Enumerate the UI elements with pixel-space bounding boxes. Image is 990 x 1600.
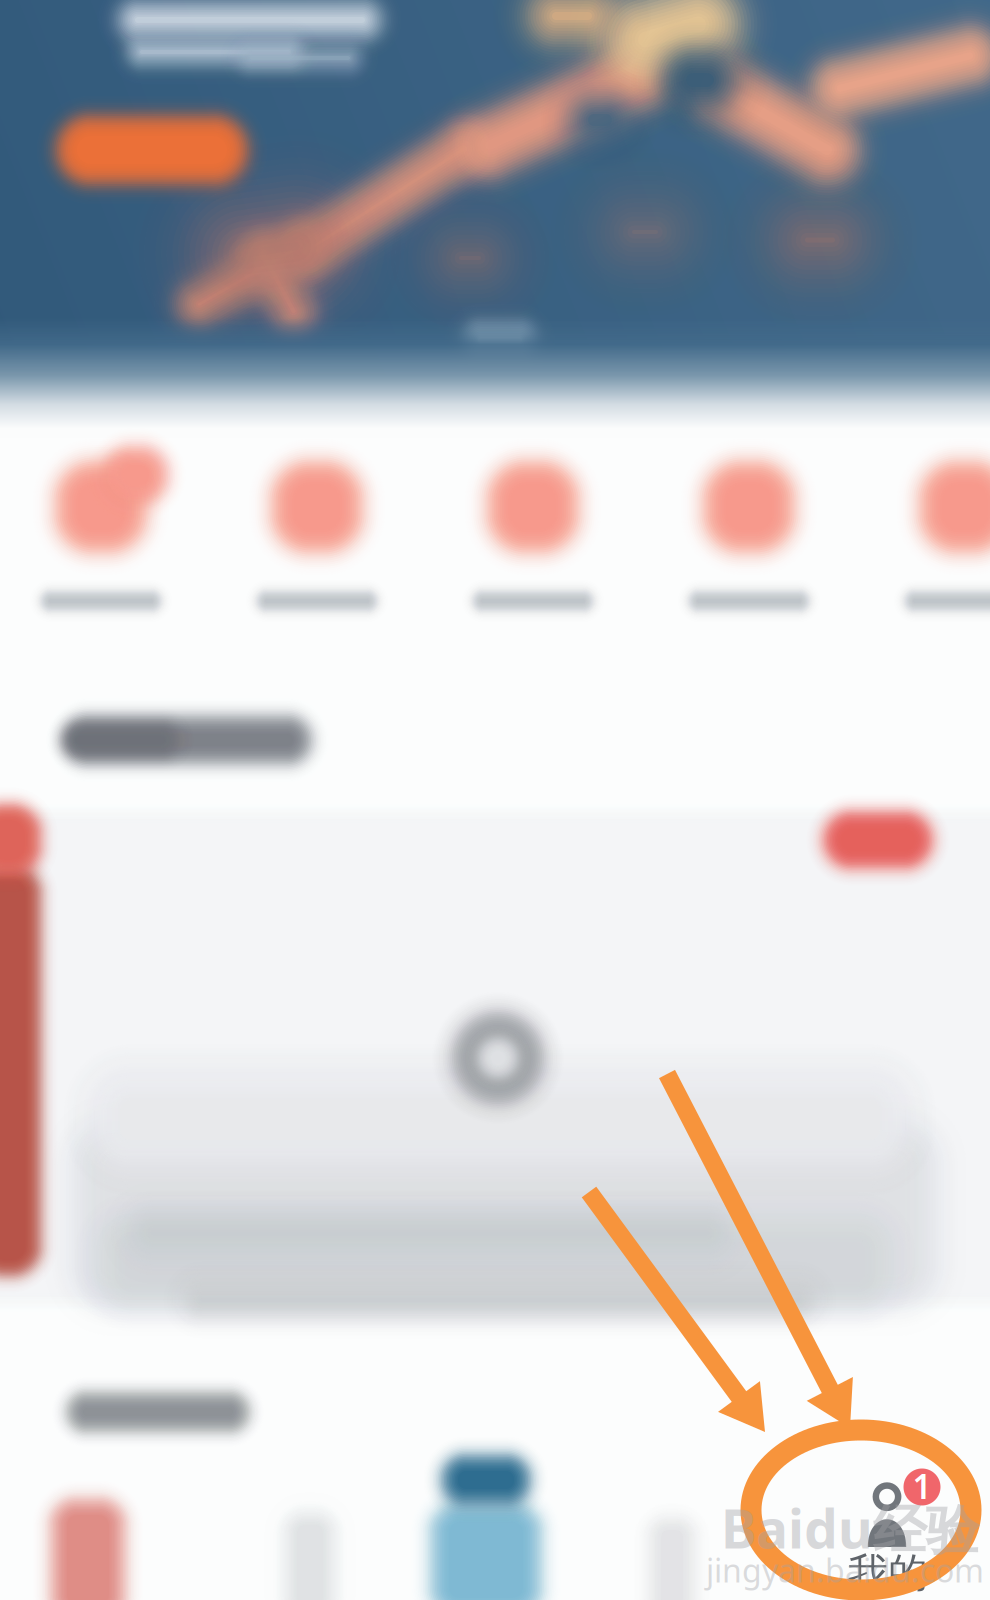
staticText: 我的 (848, 1548, 928, 1597)
button[interactable]: Category 5 (0, 0, 198, 200)
button[interactable]: Category 4 (0, 0, 198, 200)
button[interactable]: Category 3 (0, 0, 198, 200)
button[interactable]: Section heading (0, 0, 360, 120)
button[interactable]: Category 1 (0, 0, 198, 200)
staticText: Baidu经验 (721, 1492, 979, 1564)
button[interactable]: Category 2 (0, 0, 198, 200)
staticText: 1 (912, 1464, 931, 1508)
button[interactable]: 我的 (0, 0, 990, 1600)
staticText: jingyan.baidu.com (706, 1549, 984, 1591)
button[interactable]: Promotion badge (0, 0, 220, 140)
